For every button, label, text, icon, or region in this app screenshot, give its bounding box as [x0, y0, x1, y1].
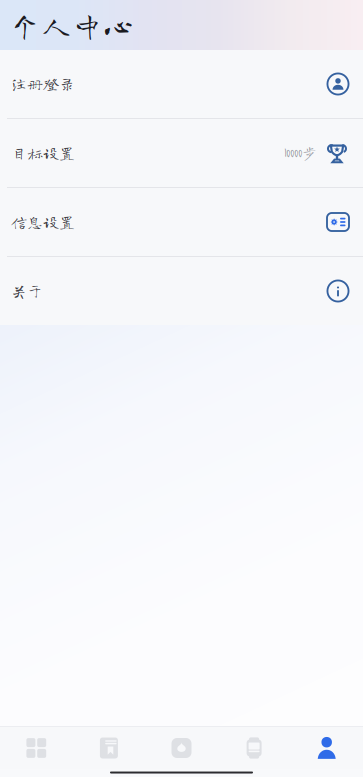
- button[interactable]: Device: [218, 727, 290, 769]
- button[interactable]: Home: [0, 727, 73, 769]
- button[interactable]: 目标设置: [0, 119, 363, 187]
- button[interactable]: 关于: [0, 257, 363, 325]
- staticText: 个人中心: [10, 10, 134, 40]
- button[interactable]: Activity: [145, 727, 218, 769]
- staticText: 注册登录: [11, 76, 75, 92]
- staticText: 10000步: [284, 146, 317, 160]
- button[interactable]: Profile: [290, 727, 363, 769]
- button[interactable]: 信息设置: [0, 188, 363, 256]
- button[interactable]: Courses: [73, 727, 145, 769]
- staticText: 目标设置: [11, 145, 75, 161]
- button[interactable]: 注册登录: [0, 50, 363, 118]
- staticText: 关于: [11, 283, 43, 299]
- staticText: 信息设置: [11, 214, 75, 230]
